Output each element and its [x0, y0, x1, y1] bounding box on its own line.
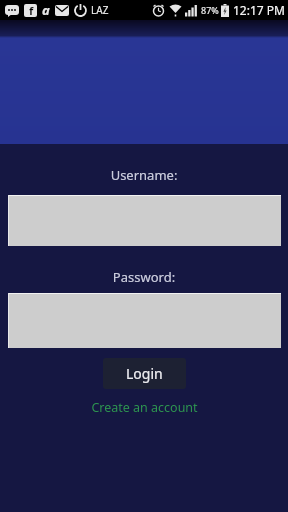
staticText: Password:	[0, 268, 288, 286]
button[interactable]: Login	[103, 358, 186, 389]
staticText: Login	[126, 364, 163, 383]
staticText: f	[29, 4, 34, 16]
staticText: 12:17 PM	[233, 2, 285, 18]
button[interactable]	[8, 195, 281, 246]
staticText: LAZ	[91, 3, 109, 17]
button[interactable]	[8, 293, 281, 348]
staticText: a	[42, 1, 50, 19]
staticText: 87%	[201, 4, 219, 16]
staticText: Username:	[0, 166, 288, 184]
button[interactable]: Create an account	[91, 399, 198, 416]
